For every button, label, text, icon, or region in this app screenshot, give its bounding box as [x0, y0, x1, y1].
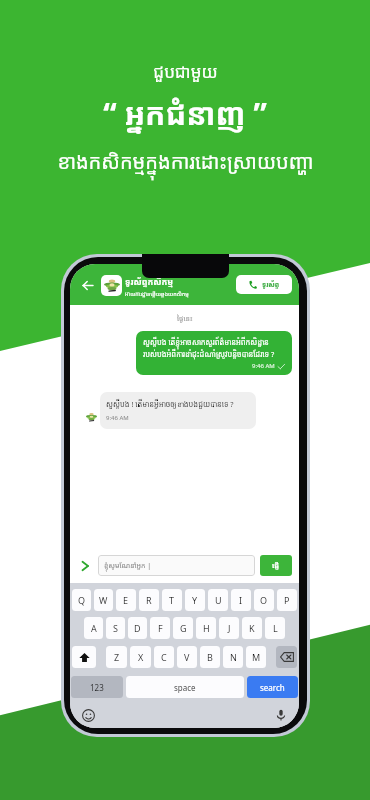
button[interactable]: Profile: [101, 275, 122, 296]
button[interactable]: W: [94, 589, 113, 611]
staticText: F: [158, 622, 163, 634]
staticText: Y: [192, 594, 198, 606]
button[interactable]: E: [116, 589, 136, 611]
staticText: E: [123, 594, 129, 606]
button[interactable]: D: [128, 617, 147, 639]
staticText: space: [174, 682, 196, 693]
button[interactable]: N: [223, 646, 243, 668]
staticText: B: [207, 651, 213, 663]
button[interactable]: X: [130, 646, 151, 668]
staticText: ផ្ញើ: [272, 561, 280, 571]
button[interactable]: Microphone: [273, 707, 289, 723]
staticText: O: [260, 594, 268, 606]
staticText: K: [249, 622, 255, 634]
staticText: X: [138, 651, 144, 663]
button[interactable]: G: [173, 617, 193, 639]
button[interactable]: Z: [106, 646, 127, 668]
button[interactable]: Y: [185, 589, 205, 611]
button[interactable]: Back: [78, 276, 96, 294]
staticText: G: [180, 622, 187, 634]
button[interactable]: ទូរស័ព្ទ: [236, 275, 292, 294]
staticText: 123: [90, 682, 104, 693]
button[interactable]: Shift: [72, 646, 96, 668]
button[interactable]: ខ្ញុំសូមណែនាំអ្នក |: [98, 555, 255, 576]
button[interactable]: space: [126, 676, 244, 698]
button[interactable]: V: [177, 646, 197, 668]
staticText: C: [161, 651, 167, 663]
button[interactable]: B: [200, 646, 220, 668]
staticText: M: [252, 651, 261, 663]
button[interactable]: Emoji: [80, 707, 96, 723]
staticText: A: [91, 622, 97, 634]
button[interactable]: A: [84, 617, 103, 639]
button[interactable]: J: [219, 617, 239, 639]
staticText: W: [99, 594, 108, 606]
staticText: H: [203, 622, 210, 634]
staticText: I: [239, 594, 243, 606]
staticText: S: [113, 622, 118, 634]
staticText: search: [260, 682, 285, 693]
staticText: Z: [114, 651, 120, 663]
button[interactable]: Expand: [79, 560, 91, 572]
staticText: ទូរស័ព្ទ: [262, 280, 280, 289]
staticText: N: [230, 651, 237, 663]
staticText: ជួបជាមួយ: [153, 60, 218, 83]
button[interactable]: P: [277, 589, 297, 611]
button[interactable]: search: [247, 676, 298, 698]
button[interactable]: L: [265, 617, 285, 639]
button[interactable]: សួស្ដីបង ! តើមានអ្វីអាចឲ្យខាងបងជួយបានទេ …: [100, 392, 256, 429]
staticText: J: [228, 622, 231, 634]
button[interactable]: U: [208, 589, 228, 611]
button[interactable]: R: [139, 589, 159, 611]
staticText: ខាងកសិកម្មក្នុងការដោះស្រាយបញ្ហា: [57, 148, 314, 175]
button[interactable]: 123: [71, 676, 123, 698]
staticText: អាយការដ្ឋានឆ្លើយឆ្លងយកសិកម្ម: [125, 290, 189, 297]
button[interactable]: Q: [72, 589, 91, 611]
button[interactable]: K: [242, 617, 262, 639]
staticText: V: [184, 651, 190, 663]
staticText: D: [134, 622, 141, 634]
button[interactable]: សួស្ដីបង តើខ្ញុំអាចសាកសួរព័ត៌មានអំពីកសិដ…: [136, 331, 292, 375]
staticText: R: [146, 594, 152, 606]
staticText: P: [284, 594, 290, 606]
staticText: 9:46 AM: [252, 362, 275, 370]
button[interactable]: M: [246, 646, 266, 668]
staticText: ទូរស័ព្ទកសិកម្ម: [125, 276, 174, 288]
button[interactable]: ផ្ញើ: [260, 555, 292, 576]
button[interactable]: T: [162, 589, 182, 611]
button[interactable]: O: [254, 589, 274, 611]
staticText: ខ្ញុំសូមណែនាំអ្នក |: [104, 561, 152, 571]
button[interactable]: C: [154, 646, 174, 668]
staticText: U: [215, 594, 222, 606]
staticText: “ អ្នកជំនាញ ”: [103, 93, 267, 134]
button[interactable]: F: [150, 617, 170, 639]
staticText: សួស្ដីបង តើខ្ញុំអាចសាកសួរព័ត៌មានអំពីកសិដ…: [143, 337, 285, 360]
staticText: សួស្ដីបង ! តើមានអ្វីអាចឲ្យខាងបងជួយបានទេ …: [106, 399, 234, 409]
staticText: 9:46 AM: [106, 414, 129, 422]
staticText: Q: [78, 594, 86, 606]
button[interactable]: H: [196, 617, 216, 639]
staticText: T: [169, 594, 175, 606]
staticText: ថ្ងៃនេះ: [177, 314, 193, 324]
button[interactable]: S: [106, 617, 125, 639]
button[interactable]: I: [231, 589, 251, 611]
staticText: L: [273, 622, 278, 634]
button[interactable]: Backspace: [276, 646, 297, 668]
